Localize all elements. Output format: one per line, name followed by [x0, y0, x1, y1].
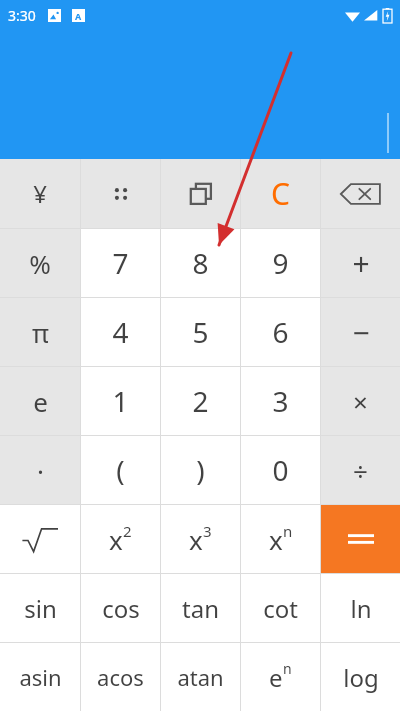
staticText: sin: [24, 592, 57, 625]
button[interactable]: π: [0, 298, 80, 366]
button[interactable]: x: [81, 505, 160, 573]
staticText: log: [343, 661, 379, 694]
button[interactable]: cos: [81, 574, 160, 642]
staticText: cot: [263, 592, 298, 625]
staticText: 5: [192, 313, 209, 351]
staticText: 4: [112, 313, 129, 351]
staticText: cos: [102, 592, 140, 625]
staticText: ÷: [353, 453, 368, 488]
button[interactable]: ln: [321, 574, 400, 642]
staticText: 3: [272, 382, 289, 420]
button[interactable]: 5: [161, 298, 240, 366]
button[interactable]: 8: [161, 229, 240, 297]
button[interactable]: x: [161, 505, 240, 573]
button[interactable]: 3: [241, 367, 320, 435]
button[interactable]: ·: [0, 436, 80, 504]
staticText: acos: [97, 662, 144, 692]
button[interactable]: 7: [81, 229, 160, 297]
button[interactable]: ×: [321, 367, 400, 435]
staticText: ·: [37, 453, 44, 488]
button[interactable]: C: [241, 159, 320, 228]
staticText: tan: [182, 592, 219, 625]
staticText: (: [116, 451, 125, 489]
staticText: ): [196, 451, 205, 489]
staticText: 8: [192, 244, 209, 282]
staticText: atan: [177, 662, 224, 692]
button[interactable]: ¥: [0, 159, 80, 228]
staticText: e: [33, 384, 48, 419]
button[interactable]: More options: [81, 159, 160, 228]
button[interactable]: 0: [241, 436, 320, 504]
staticText: 3:30: [8, 6, 36, 25]
button[interactable]: (: [81, 436, 160, 504]
staticText: n: [283, 521, 293, 541]
staticText: 2: [123, 521, 132, 541]
staticText: 9: [272, 244, 289, 282]
staticText: −: [352, 312, 370, 353]
staticText: 1: [112, 382, 129, 420]
staticText: 6: [272, 313, 289, 351]
staticText: C: [271, 173, 290, 214]
button[interactable]: ÷: [321, 436, 400, 504]
staticText: 7: [112, 244, 129, 282]
staticText: n: [283, 659, 292, 678]
button[interactable]: Copy: [161, 159, 240, 228]
button[interactable]: asin: [0, 643, 80, 711]
staticText: +: [352, 243, 370, 284]
staticText: π: [32, 315, 49, 350]
button[interactable]: 4: [81, 298, 160, 366]
button[interactable]: e: [0, 367, 80, 435]
staticText: 0: [272, 451, 289, 489]
staticText: x: [189, 522, 203, 557]
staticText: ×: [353, 384, 368, 419]
staticText: asin: [19, 662, 62, 692]
button[interactable]: +: [321, 229, 400, 297]
button[interactable]: 6: [241, 298, 320, 366]
staticText: 3: [203, 521, 212, 541]
button[interactable]: cot: [241, 574, 320, 642]
staticText: 2: [192, 382, 209, 420]
staticText: e: [269, 661, 283, 694]
button[interactable]: acos: [81, 643, 160, 711]
button[interactable]: log: [321, 643, 400, 711]
button[interactable]: tan: [161, 574, 240, 642]
button[interactable]: 2: [161, 367, 240, 435]
button[interactable]: ): [161, 436, 240, 504]
button[interactable]: %: [0, 229, 80, 297]
button[interactable]: Square root: [0, 505, 80, 573]
button[interactable]: Equals: [321, 505, 400, 573]
button[interactable]: −: [321, 298, 400, 366]
staticText: ¥: [33, 177, 47, 210]
staticText: x: [269, 522, 283, 557]
staticText: %: [29, 246, 51, 281]
button[interactable]: Backspace: [321, 159, 400, 228]
button[interactable]: 9: [241, 229, 320, 297]
button[interactable]: atan: [161, 643, 240, 711]
button[interactable]: e: [241, 643, 320, 711]
button[interactable]: 1: [81, 367, 160, 435]
button[interactable]: x: [241, 505, 320, 573]
button[interactable]: sin: [0, 574, 80, 642]
staticText: ln: [350, 592, 372, 625]
staticText: x: [109, 522, 123, 557]
staticText: A: [75, 10, 82, 22]
